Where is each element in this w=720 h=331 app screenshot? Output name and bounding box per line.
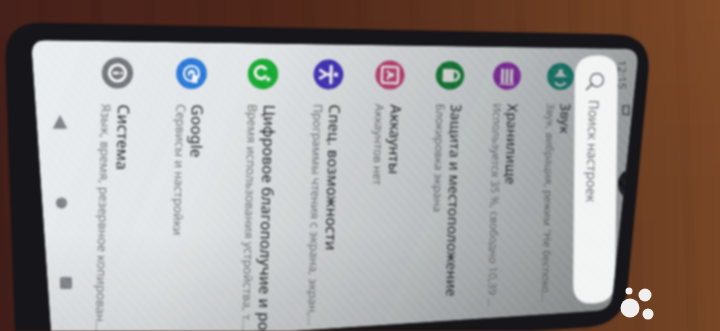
button[interactable] xyxy=(0,0,720,331)
